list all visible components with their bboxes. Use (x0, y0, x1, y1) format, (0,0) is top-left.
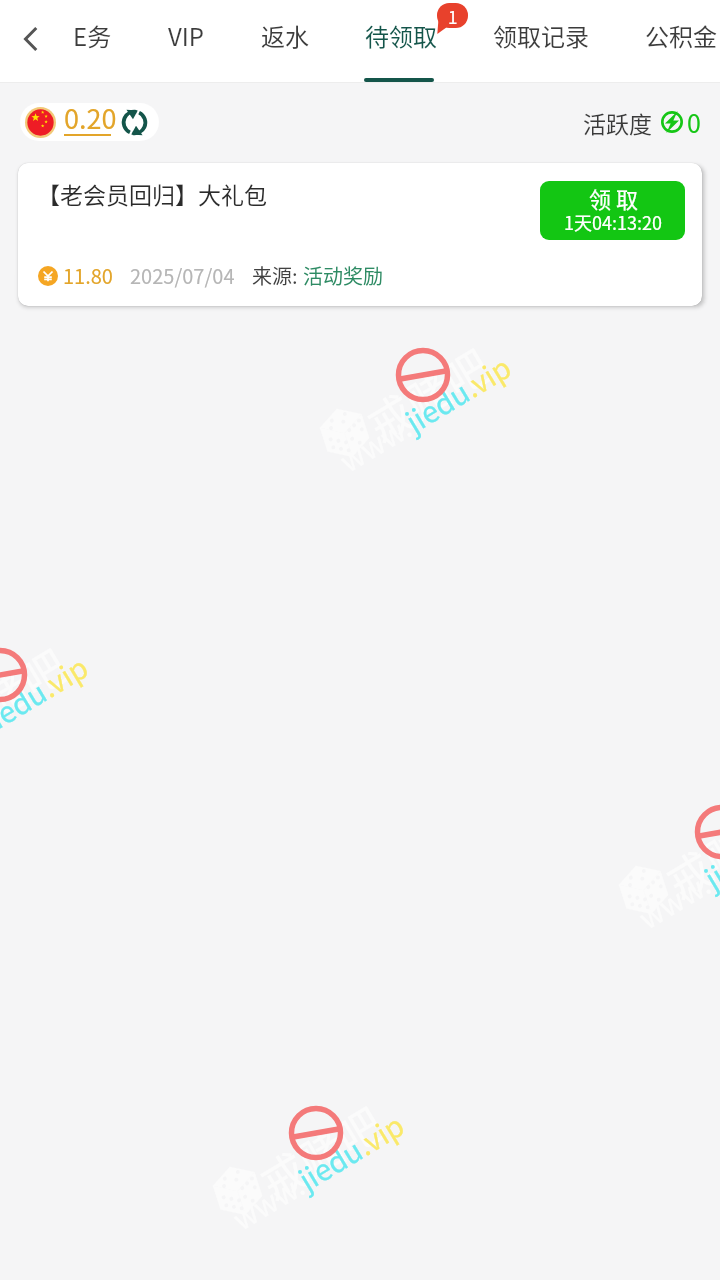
button[interactable]: 0.20 (20, 103, 159, 141)
button[interactable]: 领 取 (540, 181, 685, 240)
staticText: 戒赌吧 (354, 332, 500, 455)
staticText: 11.80 (63, 261, 113, 290)
button[interactable]: 领取记录 (465, 0, 617, 82)
button[interactable]: E务 (45, 0, 140, 82)
staticText: 公积金 (645, 18, 717, 53)
staticText: 1天04:13:20 (564, 209, 662, 235)
staticText: 领 取 (589, 182, 638, 214)
staticText: VIP (168, 18, 205, 53)
staticText: 戒赌吧 (247, 1090, 393, 1213)
staticText: 0.20 (64, 103, 117, 136)
staticText: jiedu (290, 1128, 370, 1199)
staticText: .vip (455, 344, 519, 405)
staticText: 领取记录 (493, 18, 589, 53)
staticText: 1 (448, 4, 458, 29)
staticText: .vip (348, 1102, 412, 1163)
staticText: 待领取 (365, 18, 437, 53)
staticText: 戒赌吧 (0, 632, 77, 755)
staticText: 【老会员回归】大礼包 (37, 177, 267, 210)
button[interactable]: 公积金 (617, 0, 720, 82)
button[interactable]: Refresh (120, 108, 149, 137)
staticText: jiedu (0, 670, 54, 741)
staticText: 来源: (252, 261, 298, 290)
staticText: www. (630, 862, 717, 937)
button[interactable]: VIP (140, 0, 233, 82)
staticText: 返水 (261, 18, 309, 53)
staticText: jiedu (696, 827, 720, 898)
staticText: 活跃度 (583, 106, 652, 139)
button[interactable]: Back (7, 15, 55, 63)
staticText: www. (224, 1163, 311, 1238)
staticText: 戒赌吧 (653, 789, 720, 912)
staticText: 活动奖励 (303, 261, 383, 290)
staticText: E务 (73, 18, 112, 53)
button[interactable]: 【老会员回归】大礼包 (18, 163, 702, 306)
button[interactable]: 返水 (233, 0, 337, 82)
staticText: .vip (32, 644, 96, 705)
staticText: www. (331, 405, 418, 480)
staticText: 2025/07/04 (130, 261, 235, 290)
staticText: jiedu (397, 370, 477, 441)
staticText: 0 (687, 104, 701, 140)
button[interactable]: 待领取 (337, 0, 465, 82)
